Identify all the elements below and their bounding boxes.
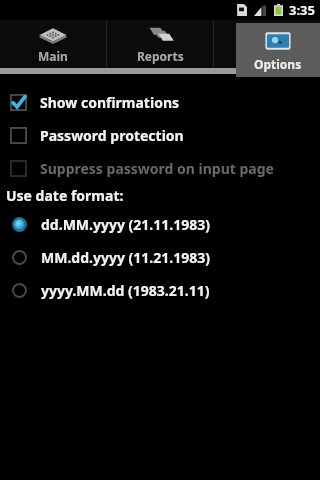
staticText: yyyy.MM.dd (1983.21.11) [41, 281, 210, 300]
staticText: dd.MM.yyyy (21.11.1983) [41, 215, 211, 234]
button[interactable]: Password protection [0, 119, 320, 152]
button[interactable]: Options [236, 23, 320, 77]
staticText: MM.dd.yyyy (11.21.1983) [41, 248, 211, 267]
button[interactable]: Main [0, 20, 106, 68]
staticText: Use date format: [6, 186, 124, 205]
staticText: Suppress password on input page [40, 159, 274, 178]
button[interactable]: Extras [214, 20, 320, 68]
staticText: Extras [248, 48, 286, 64]
staticText: Password protection [40, 126, 184, 145]
staticText: Reports [137, 48, 184, 64]
staticText: Main [38, 48, 68, 64]
button[interactable]: Show confirmations [0, 86, 320, 119]
staticText: 3:35 [289, 1, 315, 19]
button[interactable]: Reports [107, 20, 213, 68]
staticText: Options [254, 56, 302, 72]
button[interactable]: dd.MM.yyyy (21.11.1983) [0, 208, 320, 241]
button[interactable]: Suppress password on input page [0, 152, 320, 185]
button[interactable]: MM.dd.yyyy (11.21.1983) [0, 241, 320, 274]
button[interactable]: yyyy.MM.dd (1983.21.11) [0, 274, 320, 307]
staticText: Show confirmations [40, 93, 180, 112]
